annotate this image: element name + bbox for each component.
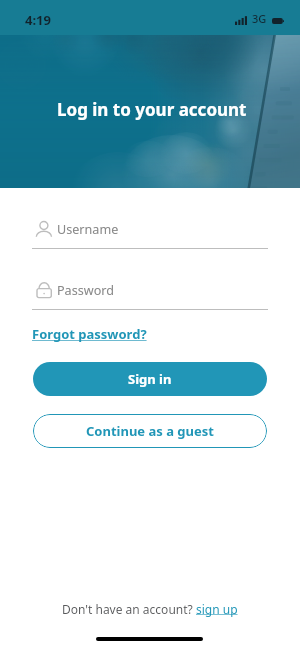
- staticText: Username: [57, 221, 119, 238]
- button[interactable]: sign up: [196, 601, 238, 617]
- staticText: Continue as a guest: [86, 422, 214, 440]
- staticText: Forgot password?: [32, 325, 147, 343]
- staticText: Sign in: [128, 370, 172, 388]
- staticText: Don't have an account?: [62, 601, 196, 617]
- staticText: Password: [57, 282, 114, 299]
- staticText: Log in to your account: [57, 98, 247, 121]
- button[interactable]: Forgot password?: [32, 325, 147, 343]
- button[interactable]: Continue as a guest: [33, 414, 267, 448]
- staticText: sign up: [196, 601, 238, 617]
- button[interactable]: Sign in: [33, 362, 267, 396]
- staticText: 4:19: [25, 11, 51, 29]
- staticText: 3G: [252, 11, 267, 26]
